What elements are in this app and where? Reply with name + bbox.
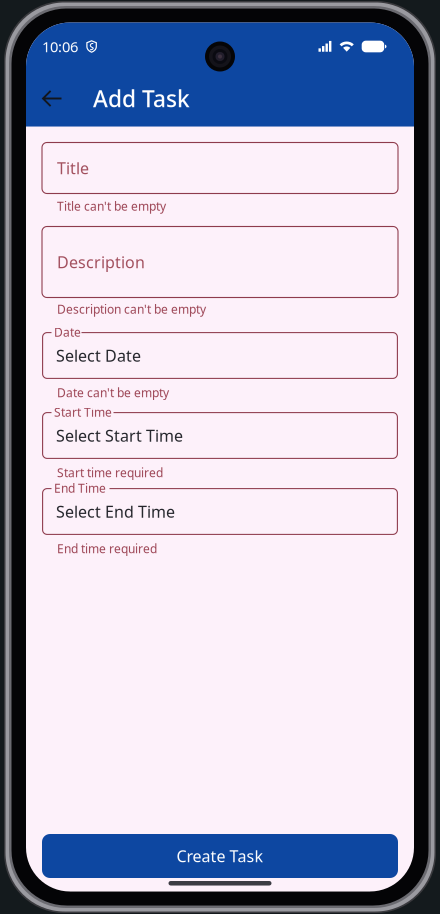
staticText: Description can't be empty: [57, 301, 206, 317]
staticText: 10:06: [42, 37, 78, 56]
button[interactable]: Back: [31, 76, 73, 120]
staticText: Date: [54, 324, 81, 340]
button[interactable]: Date: [42, 332, 398, 379]
staticText: Add Task: [93, 83, 190, 113]
staticText: Start Time: [54, 404, 112, 420]
button[interactable]: End Time: [42, 488, 398, 535]
staticText: Date can't be empty: [57, 384, 169, 400]
staticText: Select Date: [56, 345, 141, 366]
staticText: Select End Time: [56, 501, 175, 522]
staticText: Start time required: [57, 464, 163, 480]
button[interactable]: Title: [42, 142, 398, 193]
button[interactable]: Create Task: [42, 834, 398, 878]
button[interactable]: Start Time: [42, 412, 398, 459]
button[interactable]: Description: [42, 226, 398, 297]
staticText: Description: [57, 251, 145, 273]
staticText: Select Start Time: [56, 425, 183, 446]
staticText: Title can't be empty: [57, 198, 166, 214]
staticText: Title: [57, 157, 89, 179]
staticText: End time required: [57, 540, 157, 556]
staticText: End Time: [54, 480, 106, 496]
staticText: Create Task: [176, 845, 263, 867]
